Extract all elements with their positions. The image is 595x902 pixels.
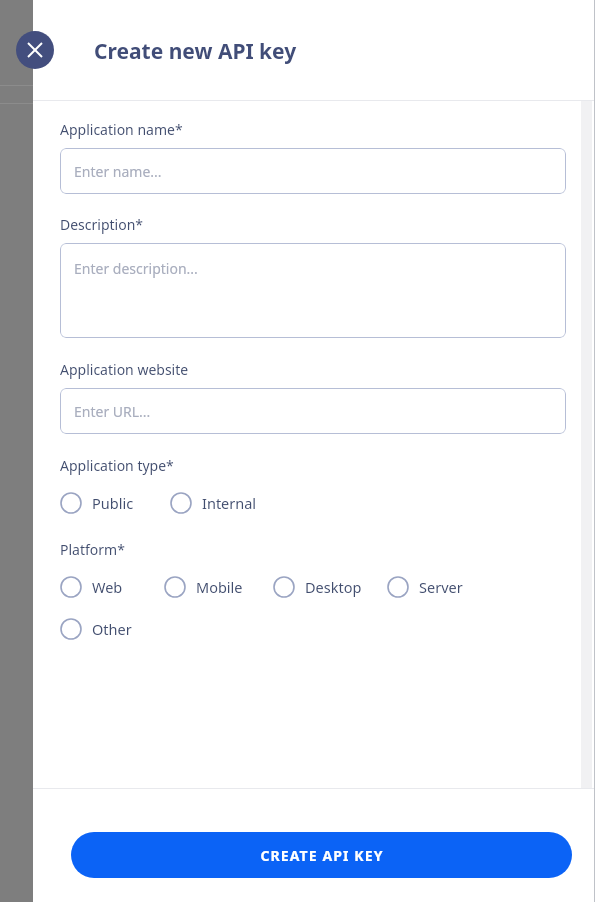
button[interactable]: Web <box>60 576 164 598</box>
staticText: Web <box>92 577 123 597</box>
button[interactable]: CREATE API KEY <box>71 832 572 878</box>
button[interactable]: Enter name... <box>60 148 566 194</box>
staticText: CREATE API KEY <box>260 846 384 865</box>
button[interactable]: Internal <box>170 492 257 514</box>
button[interactable]: Server <box>387 576 463 598</box>
button[interactable]: Public <box>60 492 170 514</box>
staticText: Application name* <box>60 120 183 139</box>
button[interactable]: Enter description... <box>60 243 566 338</box>
staticText: Application type* <box>60 456 174 475</box>
button[interactable]: Other <box>60 618 132 640</box>
staticText: Application website <box>60 360 189 379</box>
staticText: Enter name... <box>74 162 162 181</box>
button[interactable]: Desktop <box>273 576 387 598</box>
staticText: Description* <box>60 215 144 234</box>
staticText: Other <box>92 619 132 639</box>
button[interactable]: Enter URL... <box>60 388 566 434</box>
staticText: Internal <box>202 493 257 513</box>
button[interactable]: Close <box>16 31 54 69</box>
staticText: Platform* <box>60 540 125 559</box>
button[interactable]: Mobile <box>164 576 273 598</box>
staticText: Create new API key <box>94 37 297 66</box>
staticText: Enter description... <box>74 259 198 278</box>
staticText: Server <box>419 577 463 597</box>
staticText: Enter URL... <box>74 402 151 421</box>
staticText: Mobile <box>196 577 243 597</box>
staticText: Public <box>92 493 134 513</box>
staticText: Desktop <box>305 577 362 597</box>
